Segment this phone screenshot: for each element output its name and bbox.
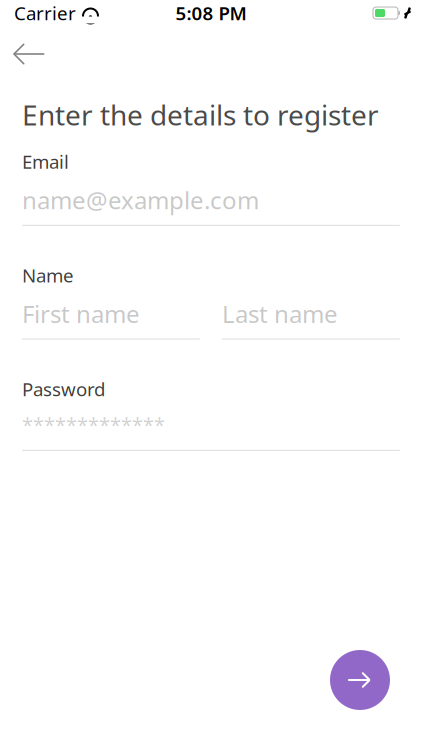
button[interactable]: Continue bbox=[330, 650, 390, 710]
staticText: Enter the details to register bbox=[22, 96, 379, 133]
staticText: First name bbox=[22, 298, 140, 329]
staticText: Password bbox=[22, 376, 105, 401]
staticText: 5:08 PM bbox=[175, 1, 246, 25]
staticText: Last name bbox=[222, 298, 338, 329]
staticText: Name bbox=[22, 263, 74, 288]
staticText: Carrier bbox=[14, 1, 76, 25]
staticText: name@example.com bbox=[22, 184, 259, 216]
staticText: Email bbox=[22, 149, 69, 174]
button[interactable]: Back bbox=[0, 32, 54, 76]
staticText: ************* bbox=[22, 411, 165, 438]
